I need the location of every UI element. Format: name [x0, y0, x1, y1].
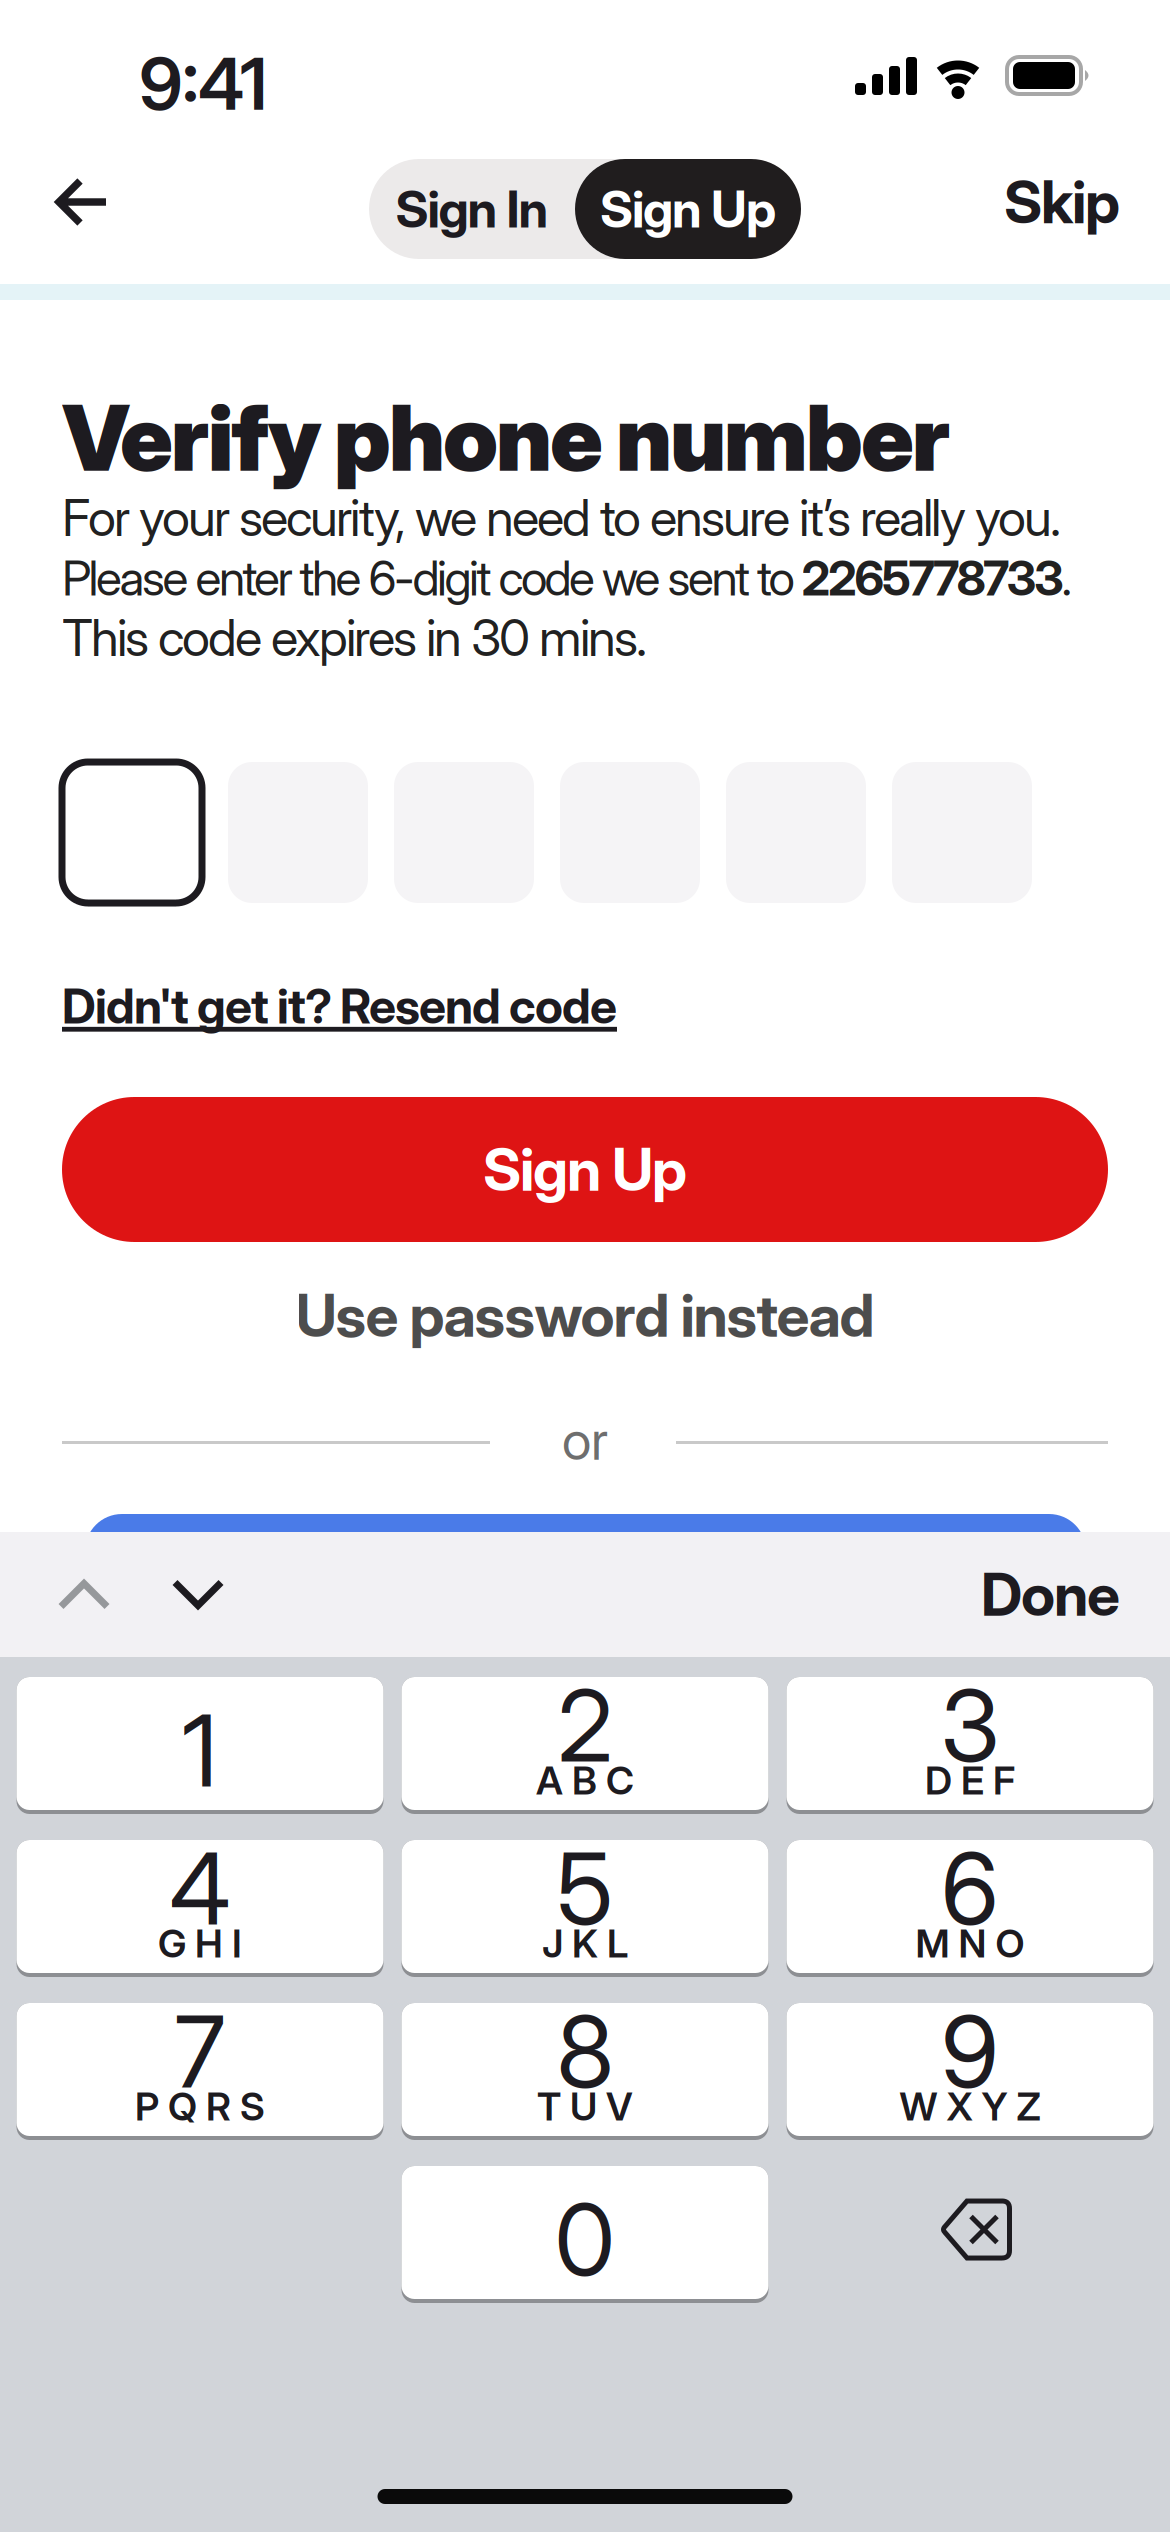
button[interactable]: Skip — [1004, 166, 1170, 237]
button[interactable]: 1 — [16, 1677, 383, 1814]
button[interactable]: 3 — [786, 1677, 1153, 1814]
staticText: Didn't get it? Resend code — [62, 977, 617, 1035]
button[interactable]: Use password instead — [62, 1280, 1108, 1351]
staticText: 2 — [557, 1666, 612, 1785]
staticText: Skip — [1004, 166, 1120, 237]
staticText: 5 — [556, 1829, 613, 1948]
staticText: J K L — [542, 1920, 628, 1967]
staticText: This code expires in 30 mins. — [62, 607, 647, 668]
staticText: Done — [981, 1559, 1120, 1630]
staticText: Sign Up — [483, 1134, 687, 1205]
button[interactable]: Next field — [110, 1579, 224, 1609]
button[interactable]: 6 — [786, 1840, 1153, 1977]
button[interactable]: 0 — [401, 2166, 768, 2303]
staticText: Sign Up — [600, 178, 776, 240]
button[interactable]: Continue with Google — [85, 1514, 1086, 1604]
button[interactable]: Sign Up — [62, 1097, 1108, 1242]
staticText: 7 — [174, 1992, 225, 2111]
staticText: or — [562, 1408, 608, 1472]
button[interactable]: Didn't get it? Resend code — [62, 977, 617, 1035]
button[interactable]: Sign In — [369, 159, 575, 259]
staticText: 6 — [941, 1829, 999, 1948]
button[interactable]: 5 — [401, 1840, 768, 1977]
staticText: M N O — [915, 1920, 1024, 1967]
staticText: 0 — [554, 2180, 615, 2299]
button[interactable]: Previous field — [0, 1579, 110, 1609]
staticText: 1 — [182, 1691, 218, 1810]
button[interactable]: Delete — [786, 2166, 1153, 2303]
staticText: T U V — [537, 2083, 633, 2130]
staticText: 8 — [556, 1992, 613, 2111]
button[interactable]: Sign Up — [575, 159, 801, 259]
button[interactable]: 4 — [16, 1840, 383, 1977]
staticText: 3 — [940, 1666, 999, 1785]
staticText: Please enter the 6-digit code we sent to… — [62, 549, 1072, 607]
button[interactable]: 8 — [401, 2003, 768, 2140]
button[interactable]: Back — [0, 172, 112, 232]
staticText: P Q R S — [135, 2083, 265, 2130]
staticText: A B C — [536, 1757, 634, 1804]
staticText: 9 — [941, 1992, 999, 2111]
button[interactable]: 7 — [16, 2003, 383, 2140]
staticText: G H I — [158, 1920, 242, 1967]
staticText: W X Y Z — [899, 2083, 1040, 2130]
button[interactable]: Done — [981, 1559, 1170, 1630]
staticText: Verify phone number — [62, 383, 950, 493]
staticText: For your security, we need to ensure it’… — [62, 487, 1061, 548]
staticText: 9:41 — [139, 40, 267, 127]
button[interactable]: 9 — [786, 2003, 1153, 2140]
staticText: Sign In — [395, 178, 548, 240]
staticText: 4 — [169, 1829, 230, 1948]
button[interactable]: 2 — [401, 1677, 768, 1814]
staticText: Use password instead — [295, 1280, 874, 1351]
staticText: D E F — [925, 1757, 1015, 1804]
